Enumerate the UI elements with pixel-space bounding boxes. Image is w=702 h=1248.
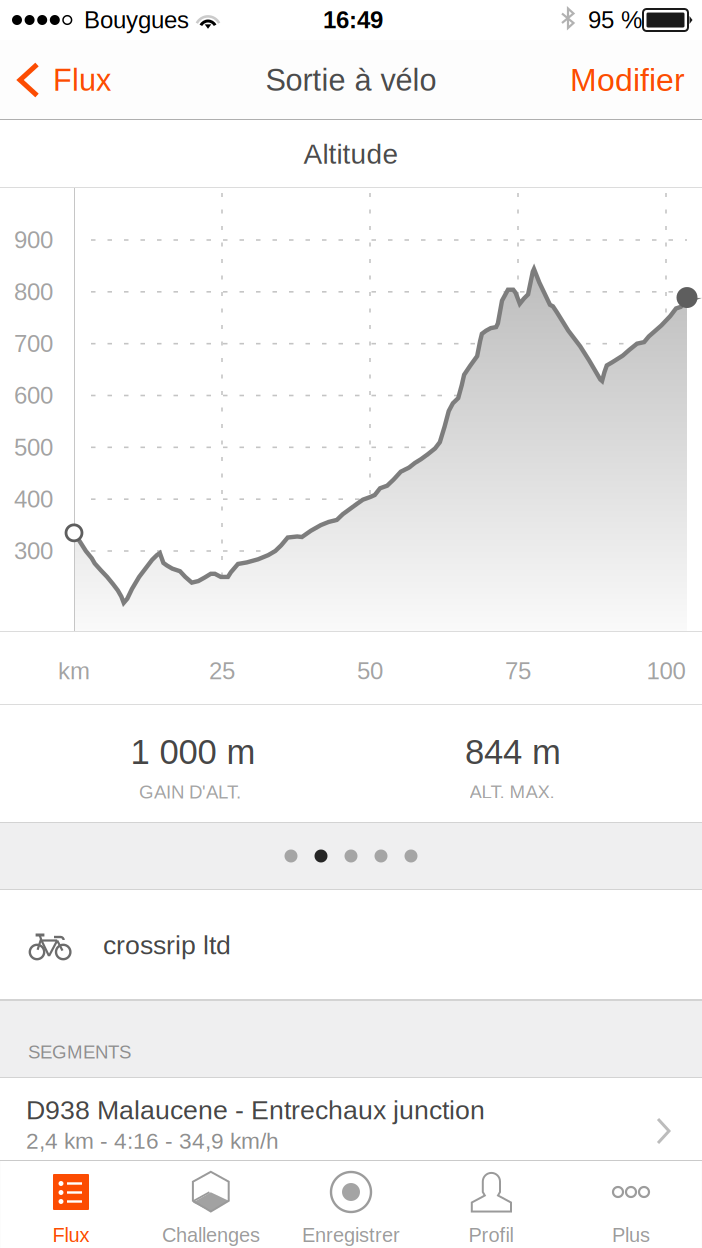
staticText: 100 (646, 658, 685, 684)
staticText: 600 (14, 382, 53, 409)
staticText: 400 (14, 486, 53, 513)
staticText: 16:49 (323, 7, 383, 33)
staticText: 2,4 km - 4:16 - 34,9 km/h (26, 1128, 279, 1154)
staticText: 25 (209, 658, 235, 684)
staticText: Challenges (162, 1224, 260, 1246)
staticText: 75 (505, 658, 531, 684)
button[interactable]: Profil (421, 1160, 561, 1248)
button[interactable]: Challenges (141, 1160, 281, 1248)
staticText: Enregistrer (302, 1224, 400, 1246)
staticText: 700 (14, 330, 53, 357)
button[interactable]: D938 Malaucene - Entrechaux junction (0, 1078, 702, 1160)
button[interactable]: crossrip ltd (0, 890, 702, 1000)
button[interactable]: Modifier (540, 40, 702, 120)
staticText: Flux (52, 1224, 89, 1246)
button[interactable]: Enregistrer (281, 1160, 421, 1248)
staticText: 1 000 m (130, 733, 255, 771)
staticText: Bouygues (84, 7, 189, 33)
staticText: 95 % (588, 7, 642, 33)
staticText: GAIN D'ALT. (139, 782, 241, 802)
button[interactable]: Flux (0, 40, 125, 120)
staticText: SEGMENTS (28, 1042, 131, 1062)
staticText: 300 (14, 538, 53, 564)
staticText: 800 (14, 278, 53, 305)
staticText: Profil (468, 1224, 513, 1246)
button[interactable]: Plus (561, 1160, 701, 1248)
staticText: 500 (14, 434, 53, 461)
staticText: D938 Malaucene - Entrechaux junction (26, 1095, 485, 1125)
button[interactable]: Flux (1, 1160, 141, 1248)
staticText: crossrip ltd (103, 930, 231, 960)
staticText: Sortie à vélo (265, 63, 436, 97)
staticText: 844 m (465, 733, 561, 771)
staticText: 900 (14, 227, 53, 253)
staticText: km (58, 658, 90, 684)
staticText: Flux (53, 63, 111, 97)
staticText: Modifier (570, 62, 685, 98)
staticText: 50 (357, 658, 383, 684)
staticText: Plus (612, 1224, 650, 1246)
staticText: ALT. MAX. (469, 782, 554, 802)
staticText: Altitude (303, 138, 398, 170)
